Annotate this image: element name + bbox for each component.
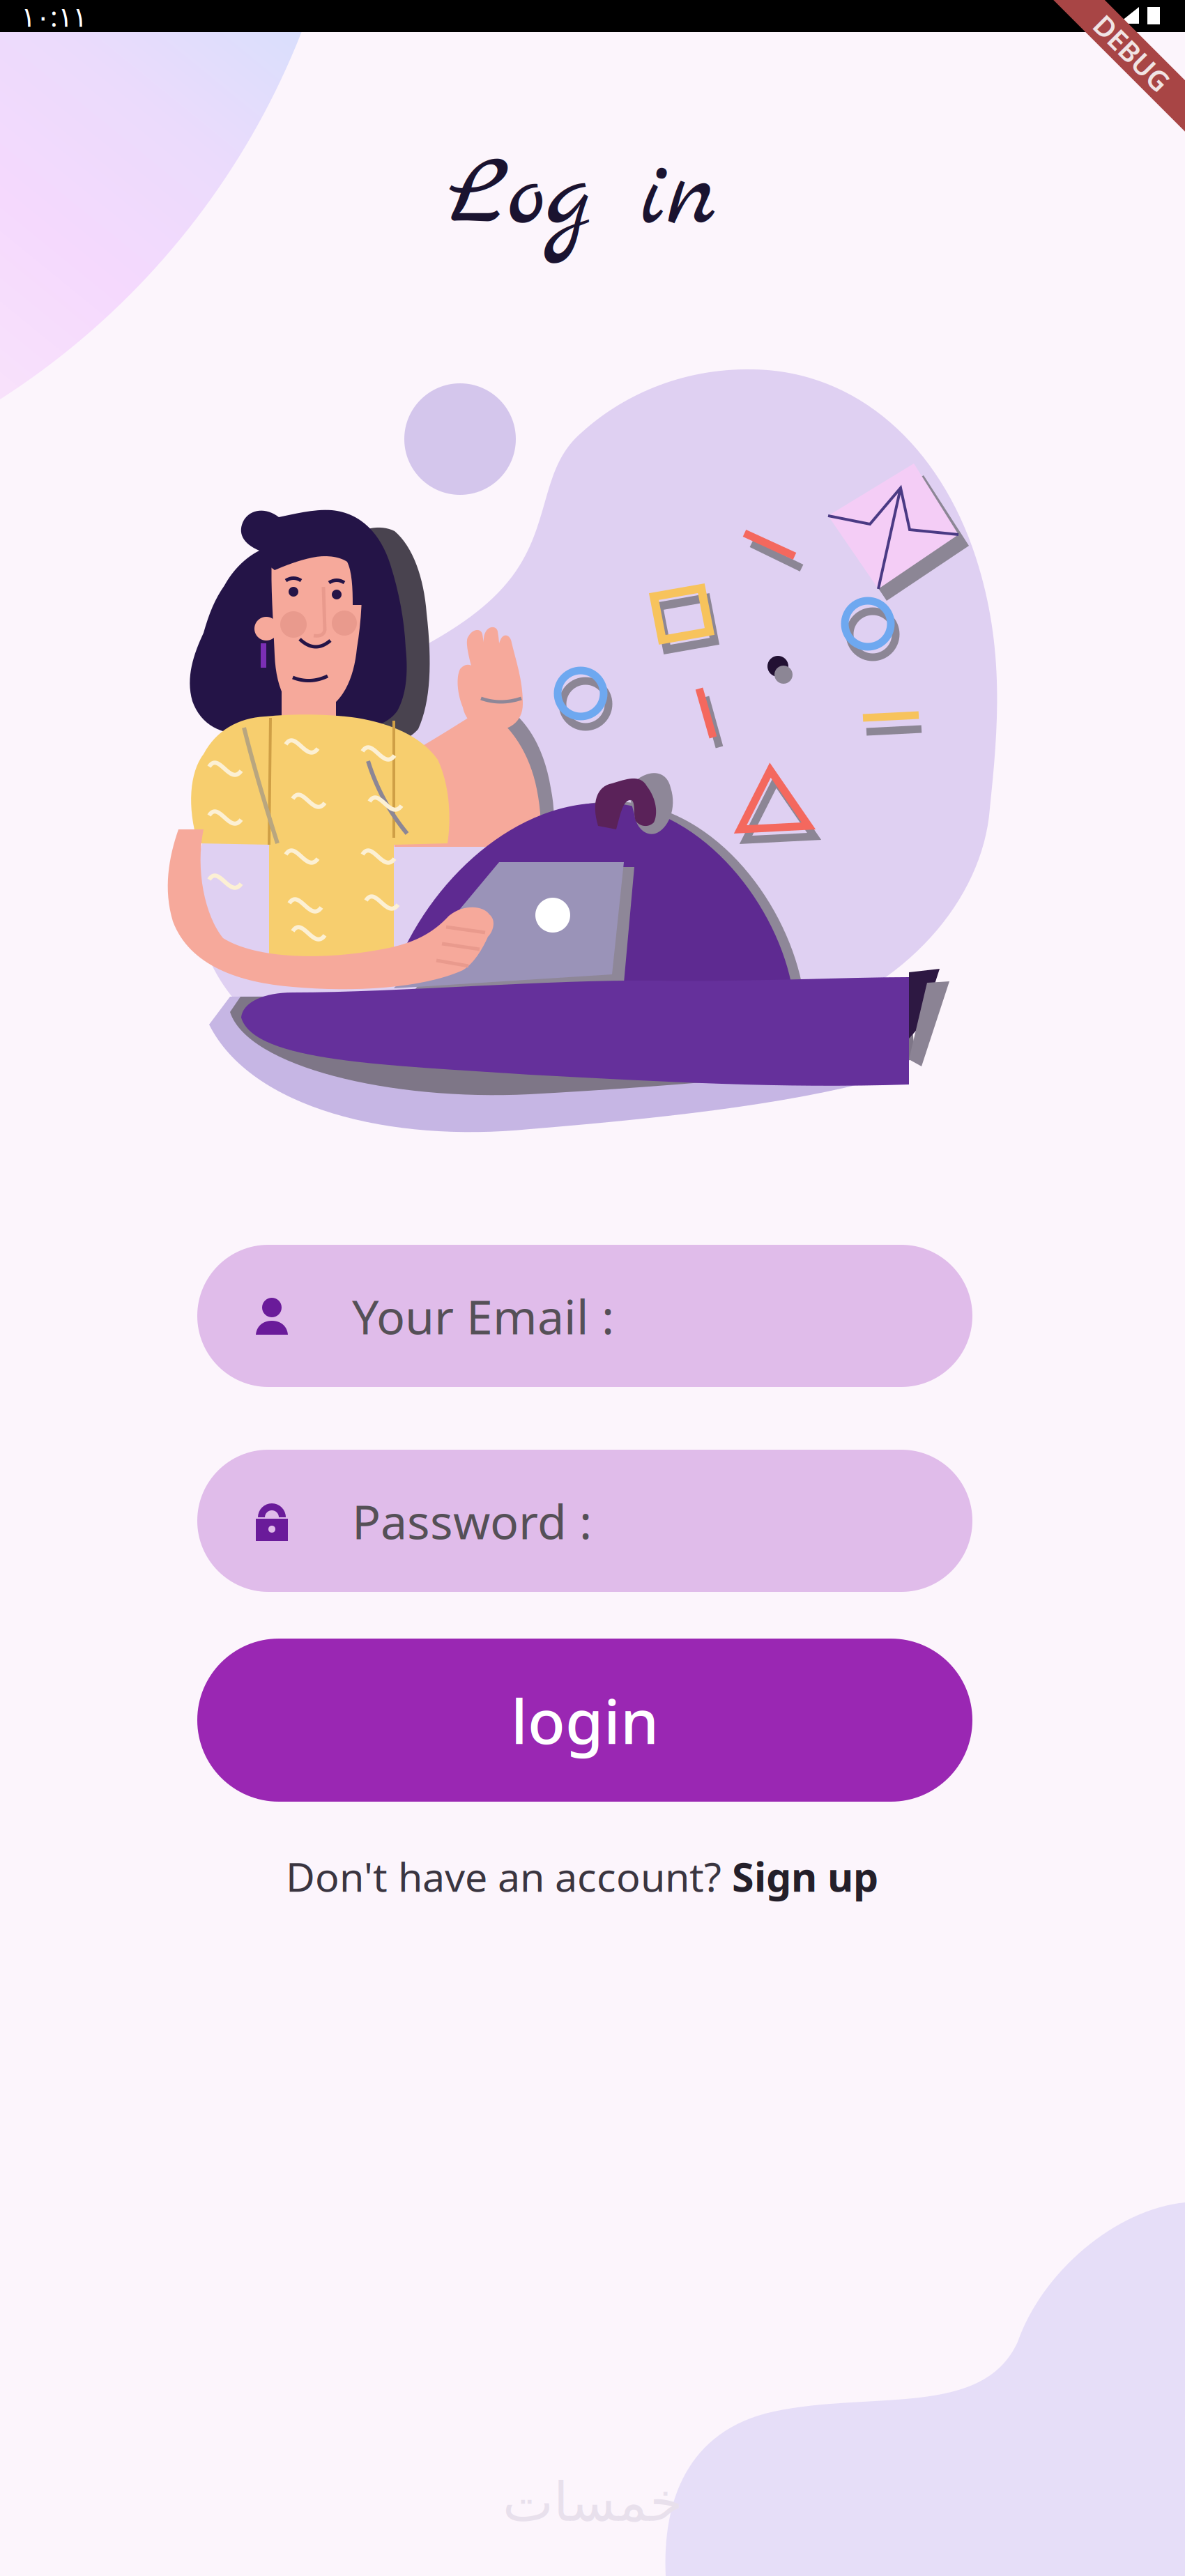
button[interactable]: Your Email : — [197, 1245, 972, 1387]
staticText: خمسات — [502, 2472, 683, 2533]
staticText: Don't have an account? — [286, 1850, 732, 1903]
staticText: ١٠:١١ — [21, 0, 87, 34]
staticText: login — [511, 1679, 659, 1761]
staticText: Sign up — [732, 1850, 878, 1903]
button[interactable]: Don't have an account? — [286, 1840, 878, 1912]
staticText: Password : — [352, 1489, 592, 1552]
staticText: DEBUG — [1085, 34, 1179, 71]
button[interactable]: login — [197, 1639, 972, 1802]
button[interactable]: Password : — [197, 1450, 972, 1592]
staticText: Log in — [448, 133, 716, 263]
staticText: Your Email : — [352, 1284, 614, 1347]
